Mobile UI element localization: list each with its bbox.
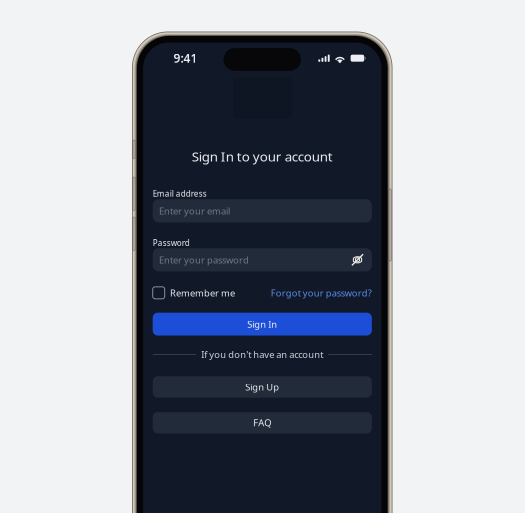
staticText: 9:41 xyxy=(173,50,197,66)
staticText: Email address xyxy=(153,188,207,199)
staticText: Password xyxy=(153,238,190,248)
button[interactable]: Remember me xyxy=(153,287,235,299)
button[interactable]: Sign Up xyxy=(153,376,372,398)
staticText: FAQ xyxy=(253,417,271,429)
staticText: Sign In xyxy=(247,318,277,330)
button[interactable]: FAQ xyxy=(153,412,372,433)
staticText: If you don't have an account xyxy=(201,348,323,361)
staticText: Enter your email xyxy=(159,205,230,217)
staticText: Forgot your password? xyxy=(271,287,372,299)
button[interactable]: Forgot your password? xyxy=(271,287,372,299)
staticText: Remember me xyxy=(170,287,235,299)
button[interactable]: Sign In xyxy=(153,313,372,335)
staticText: Sign In to your account xyxy=(192,147,333,165)
button[interactable]: Show password xyxy=(350,253,364,267)
staticText: Enter your password xyxy=(159,254,249,266)
staticText: Sign Up xyxy=(245,381,279,393)
